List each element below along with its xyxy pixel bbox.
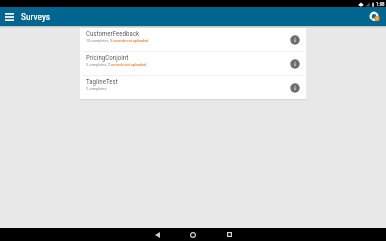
button[interactable]: Info — [290, 83, 300, 93]
button[interactable]: Recent apps — [218, 228, 240, 241]
button[interactable]: Info — [290, 35, 300, 45]
staticText: Surveys — [21, 11, 51, 22]
staticText: CustomerFeedback — [86, 30, 140, 38]
staticText: PricingConjoint — [86, 54, 129, 62]
button[interactable]: Open navigation drawer — [4, 11, 15, 23]
staticText: 2 completes — [86, 86, 107, 91]
button[interactable]: Home — [182, 228, 204, 241]
button[interactable]: Back — [146, 228, 168, 241]
button[interactable]: CustomerFeedback — [80, 28, 306, 51]
staticText: 3 completes, 2 records not uploaded — [86, 62, 147, 67]
button[interactable]: TaglineTest — [80, 76, 306, 99]
button[interactable]: Sync — [368, 10, 381, 23]
staticText: 1:08 — [376, 1, 385, 7]
button[interactable]: Info — [290, 59, 300, 69]
button[interactable]: PricingConjoint — [80, 52, 306, 75]
staticText: TaglineTest — [86, 78, 118, 86]
staticText: 10 completes, 5 records not uploaded — [86, 38, 149, 43]
